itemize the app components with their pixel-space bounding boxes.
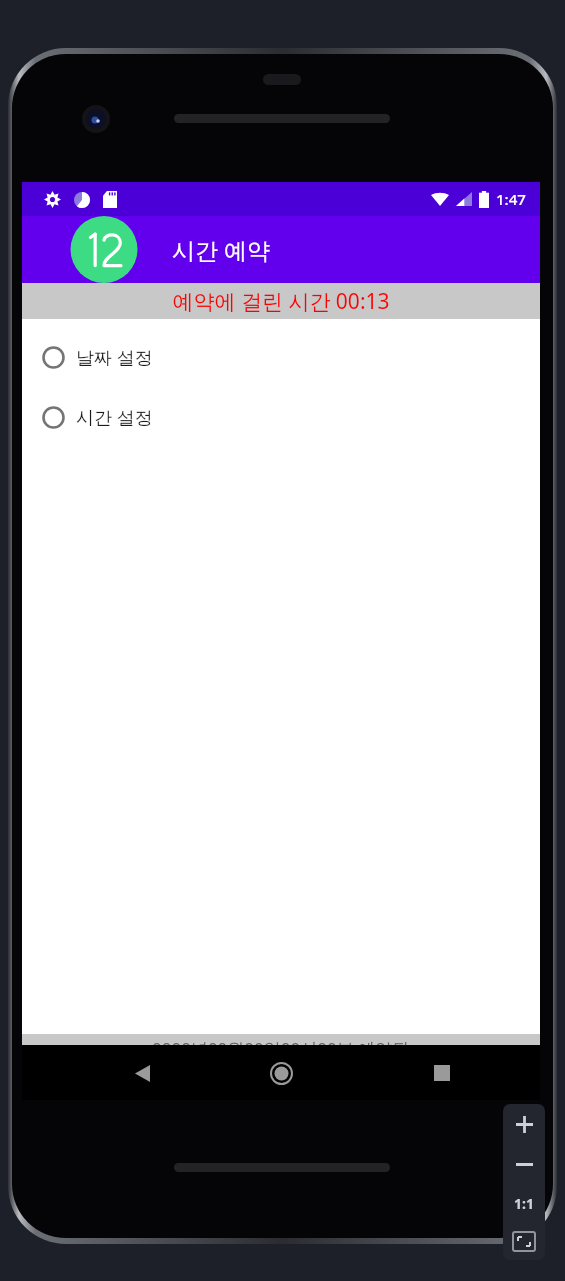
- button[interactable]: Home: [260, 1052, 302, 1094]
- button[interactable]: Back: [122, 1053, 162, 1093]
- button[interactable]: Fit to screen: [503, 1223, 545, 1260]
- staticText: 1:47: [496, 189, 526, 209]
- staticText: 1:1: [514, 1194, 534, 1213]
- button[interactable]: Zoom out: [503, 1144, 545, 1184]
- button[interactable]: Recent apps: [422, 1053, 462, 1093]
- button[interactable]: 시간 설정: [22, 397, 540, 437]
- staticText: 예약에 걸린 시간 00:13: [172, 287, 390, 316]
- button[interactable]: Zoom in: [503, 1104, 545, 1144]
- button[interactable]: 날짜 설정: [22, 337, 540, 377]
- staticText: 시간 설정: [76, 405, 153, 430]
- staticText: 날짜 설정: [76, 345, 153, 370]
- button[interactable]: Actual size: [503, 1184, 545, 1223]
- staticText: 시간 예약: [172, 234, 270, 265]
- other: App icon: [70, 216, 138, 283]
- staticText: 0000년00월00일00시00분 예약됨: [152, 1037, 410, 1060]
